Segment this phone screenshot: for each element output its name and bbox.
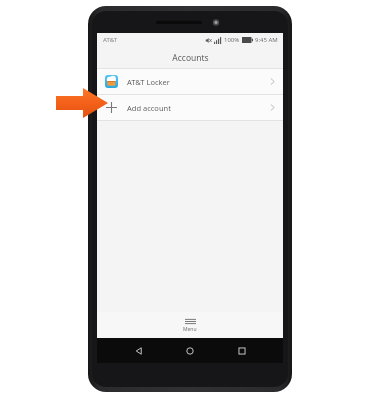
staticText: Menu	[183, 326, 197, 333]
button[interactable]: Menu	[97, 312, 283, 338]
staticText: AT&T	[103, 36, 117, 44]
staticText: 100%	[224, 36, 240, 44]
staticText: 9:45 AM	[255, 36, 278, 44]
staticText: AT&T Locker	[127, 77, 170, 87]
button[interactable]: Home	[180, 341, 200, 361]
button[interactable]: Recent apps	[232, 341, 252, 361]
button[interactable]: AT&T Locker	[97, 69, 283, 94]
staticText: Add account	[127, 103, 171, 113]
staticText: Accounts	[172, 52, 209, 64]
button[interactable]: Back	[129, 341, 149, 361]
button[interactable]: Add account	[97, 95, 283, 120]
